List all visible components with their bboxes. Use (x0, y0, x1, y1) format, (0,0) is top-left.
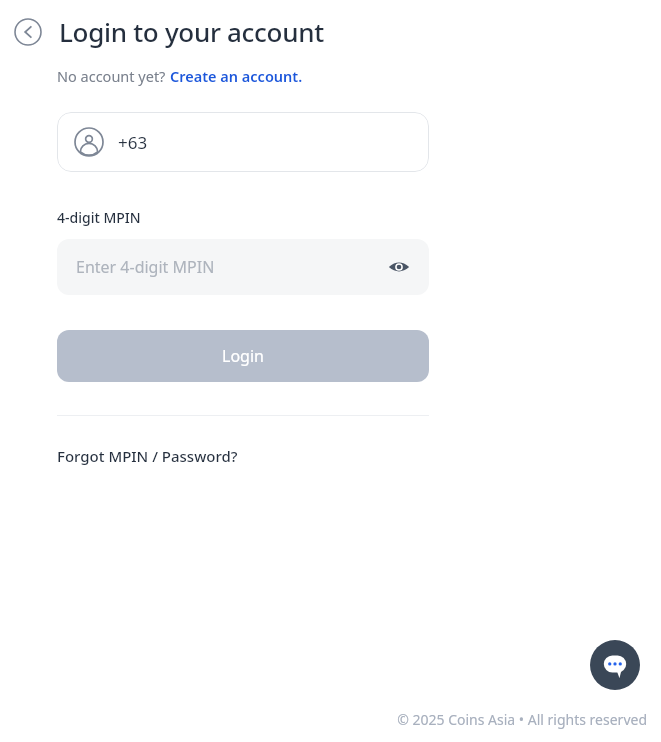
button[interactable]: Show MPIN (383, 251, 415, 283)
staticText: Forgot MPIN / Password? (57, 446, 238, 466)
staticText: Create an account. (170, 66, 303, 86)
button[interactable]: Chat support (590, 640, 640, 690)
staticText: © 2025 Coins Asia • All rights reserved (397, 710, 647, 729)
staticText: Login to your account (59, 14, 324, 49)
staticText: No account yet? (57, 66, 170, 86)
staticText: 4-digit MPIN (57, 208, 141, 227)
staticText: +63 (118, 131, 148, 154)
button[interactable]: Back (13, 17, 43, 47)
button[interactable]: Login (57, 330, 429, 382)
staticText: Enter 4-digit MPIN (76, 256, 215, 278)
button[interactable]: Enter 4-digit MPIN (57, 239, 429, 295)
button[interactable]: +63 (57, 112, 429, 172)
button[interactable]: Forgot MPIN / Password? (57, 446, 238, 466)
button[interactable]: Create an account. (170, 66, 303, 86)
staticText: Login (222, 345, 264, 367)
